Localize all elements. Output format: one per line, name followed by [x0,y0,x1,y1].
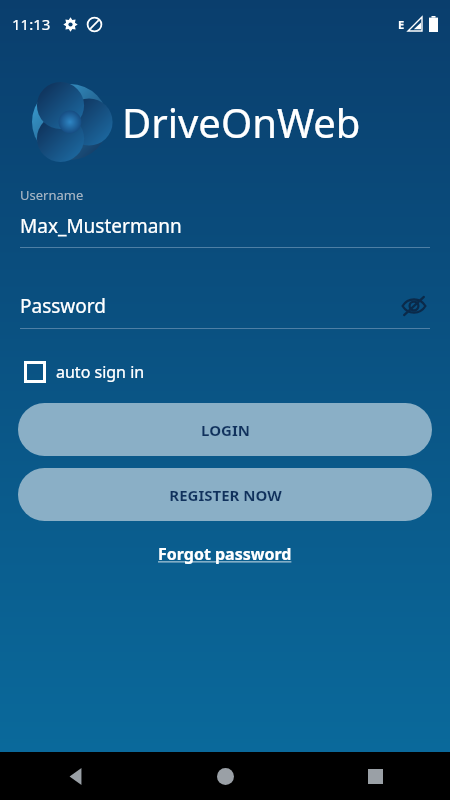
staticText: LOGIN [201,420,250,440]
button[interactable]: Home [150,752,300,800]
button[interactable]: Recent apps [300,752,450,800]
staticText: DriveOnWeb [122,95,361,149]
staticText: E [398,17,405,32]
staticText: auto sign in [56,361,145,383]
staticText: 11:13 [12,14,51,34]
button[interactable]: LOGIN [18,403,432,456]
button[interactable]: auto sign in [20,357,149,387]
staticText: REGISTER NOW [169,485,282,505]
button[interactable]: Show password [398,290,430,322]
staticText: Username [20,186,84,204]
button[interactable]: REGISTER NOW [18,468,432,521]
button[interactable]: Forgot password [152,537,298,571]
staticText: Max_Mustermann [20,213,182,239]
staticText: Password [20,293,398,319]
button[interactable]: Back [0,752,150,800]
